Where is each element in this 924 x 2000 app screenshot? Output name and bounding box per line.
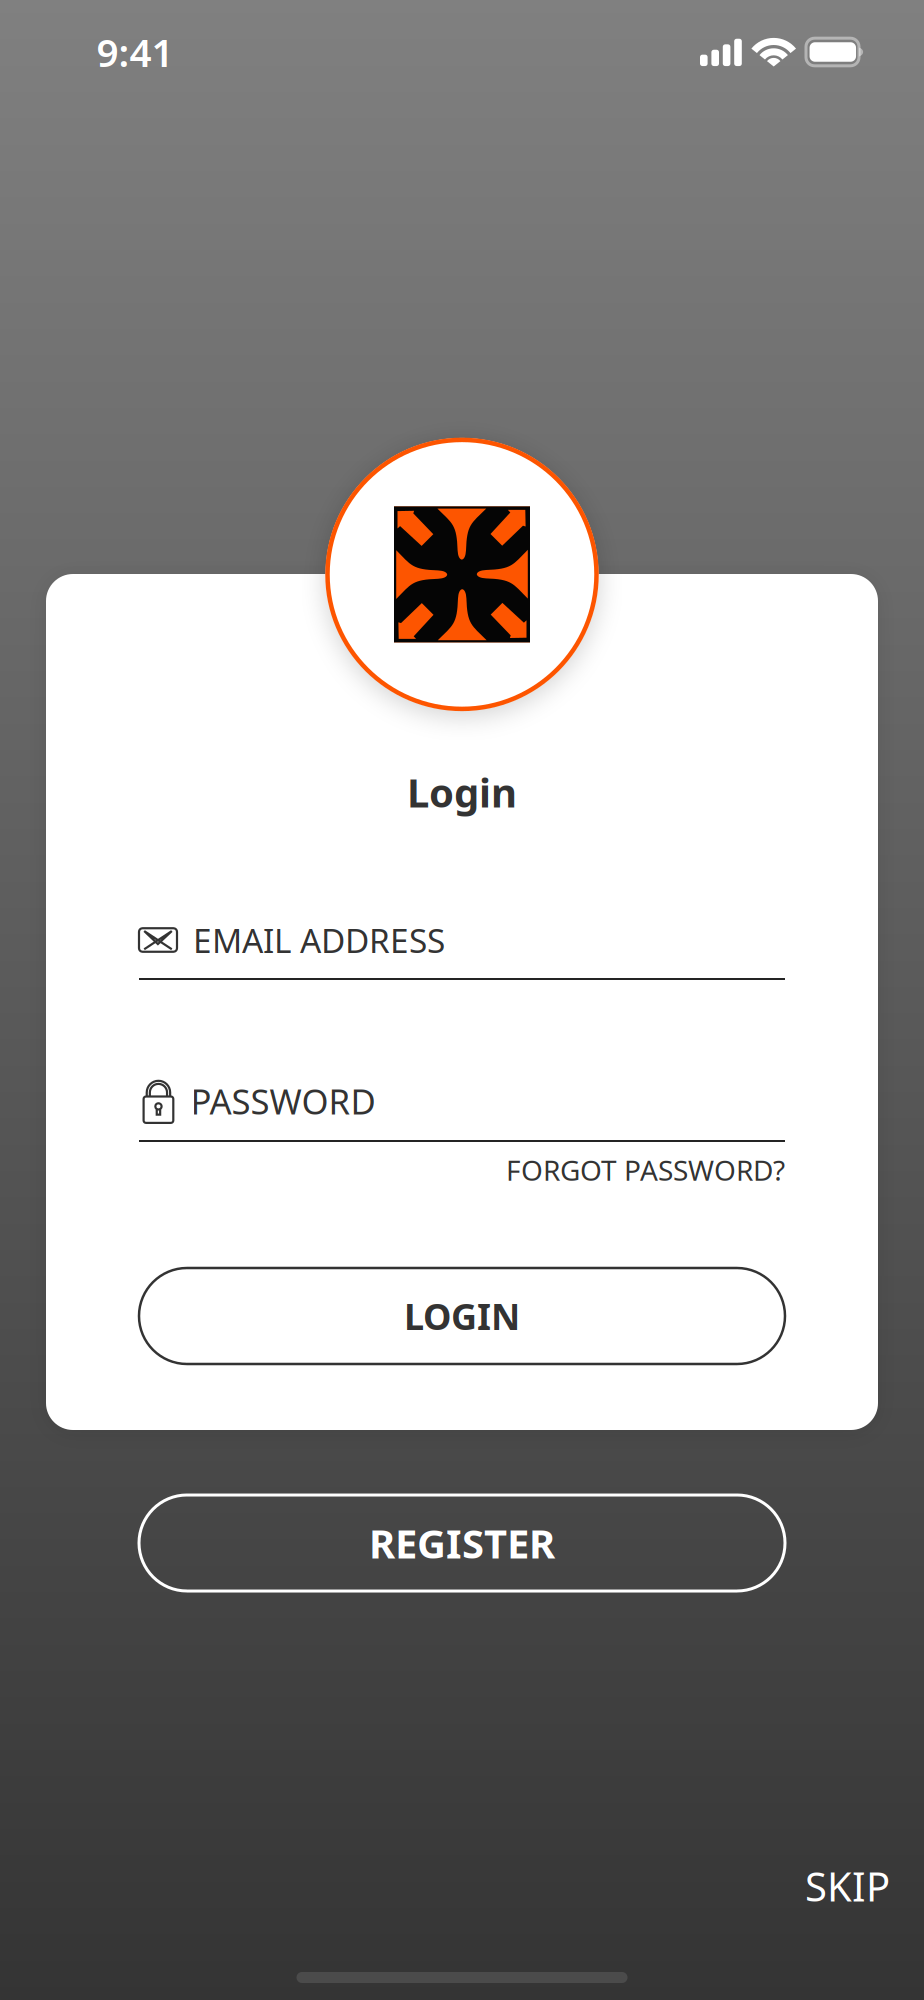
staticText: LOGIN [404,1292,520,1340]
button[interactable]: SKIP [780,1858,890,1914]
button[interactable]: REGISTER [139,1495,785,1591]
staticText: PASSWORD [190,1078,375,1124]
staticText: Login [407,765,517,818]
button[interactable]: FORGOT PASSWORD? [139,1152,785,1188]
staticText: REGISTER [369,1516,555,1569]
button[interactable]: EMAIL ADDRESS [139,916,785,964]
button[interactable]: LOGIN [139,1268,785,1364]
staticText: SKIP [805,1859,890,1912]
staticText: 9:41 [96,26,173,78]
button[interactable]: PASSWORD [139,1077,785,1125]
staticText: FORGOT PASSWORD? [506,1151,785,1189]
staticText: EMAIL ADDRESS [193,918,445,962]
